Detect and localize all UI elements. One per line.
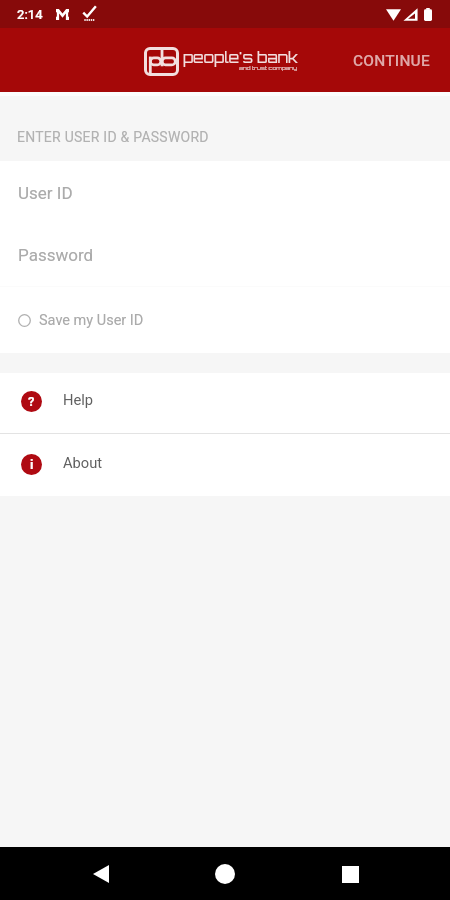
button[interactable]: CONTINUE bbox=[332, 38, 450, 82]
button[interactable]: Recent apps bbox=[326, 850, 374, 898]
button[interactable]: i bbox=[0, 434, 450, 496]
staticText: ENTER USER ID & PASSWORD bbox=[17, 129, 209, 145]
staticText: Help bbox=[63, 391, 94, 408]
staticText: About bbox=[63, 454, 103, 471]
button[interactable]: ? bbox=[0, 373, 450, 433]
staticText: Password bbox=[18, 245, 94, 265]
staticText: CONTINUE bbox=[353, 52, 430, 70]
staticText: people's bank bbox=[183, 48, 298, 67]
button[interactable]: Back bbox=[77, 850, 125, 898]
staticText: 2:14 bbox=[17, 7, 43, 22]
button[interactable]: User ID bbox=[0, 161, 450, 224]
button[interactable]: Save my User ID bbox=[0, 287, 450, 353]
staticText: Save my User ID bbox=[39, 312, 144, 329]
staticText: i bbox=[30, 457, 34, 472]
button[interactable]: Password bbox=[0, 224, 450, 286]
staticText: User ID bbox=[18, 183, 73, 203]
staticText: ? bbox=[28, 394, 35, 409]
button[interactable]: Home bbox=[201, 850, 249, 898]
staticText: and trust company bbox=[239, 64, 298, 71]
